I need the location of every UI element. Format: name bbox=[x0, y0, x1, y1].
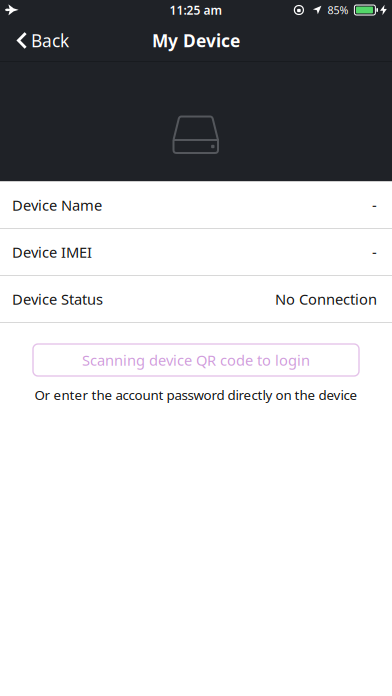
staticText: Device Name bbox=[12, 195, 102, 215]
button[interactable]: Back bbox=[0, 29, 69, 52]
staticText: No Connection bbox=[275, 289, 377, 309]
staticText: Back bbox=[31, 29, 69, 52]
staticText: Device Status bbox=[12, 289, 103, 309]
staticText: My Device bbox=[152, 29, 240, 52]
button[interactable]: Scanning device QR code to login bbox=[33, 344, 359, 376]
staticText: Scanning device QR code to login bbox=[82, 350, 310, 370]
staticText: 11:25 am bbox=[169, 2, 222, 18]
staticText: 85% bbox=[327, 3, 348, 17]
staticText: - bbox=[372, 242, 377, 262]
staticText: - bbox=[372, 195, 377, 215]
staticText: Device IMEI bbox=[12, 242, 92, 262]
staticText: Or enter the account password directly o… bbox=[34, 386, 357, 404]
